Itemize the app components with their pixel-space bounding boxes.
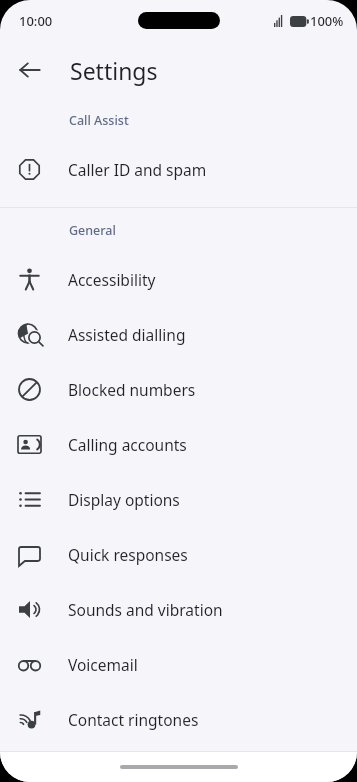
- button[interactable]: Calling accounts: [0, 417, 357, 472]
- staticText: Caller ID and spam: [68, 159, 207, 180]
- staticText: Blocked numbers: [68, 379, 196, 400]
- staticText: Contact ringtones: [68, 709, 199, 730]
- button[interactable]: Assisted dialling: [0, 307, 357, 362]
- staticText: Calling accounts: [68, 434, 187, 455]
- button[interactable]: Display options: [0, 472, 357, 527]
- button[interactable]: Sounds and vibration: [0, 582, 357, 637]
- button[interactable]: Caller ID and spam: [0, 142, 357, 197]
- staticText: Call Assist: [69, 112, 129, 129]
- button[interactable]: Blocked numbers: [0, 362, 357, 417]
- staticText: Quick responses: [68, 544, 188, 565]
- staticText: Accessibility: [68, 269, 156, 290]
- button[interactable]: Back: [6, 46, 54, 94]
- staticText: 100%: [310, 12, 344, 30]
- staticText: Voicemail: [68, 654, 138, 675]
- staticText: Settings: [70, 55, 158, 86]
- staticText: Sounds and vibration: [68, 599, 223, 620]
- staticText: Assisted dialling: [68, 324, 186, 345]
- button[interactable]: Accessibility: [0, 252, 357, 307]
- button[interactable]: Voicemail: [0, 637, 357, 692]
- button[interactable]: Quick responses: [0, 527, 357, 582]
- button[interactable]: Contact ringtones: [0, 692, 357, 747]
- staticText: 10:00: [19, 12, 53, 30]
- staticText: General: [69, 222, 116, 239]
- staticText: Display options: [68, 489, 180, 510]
